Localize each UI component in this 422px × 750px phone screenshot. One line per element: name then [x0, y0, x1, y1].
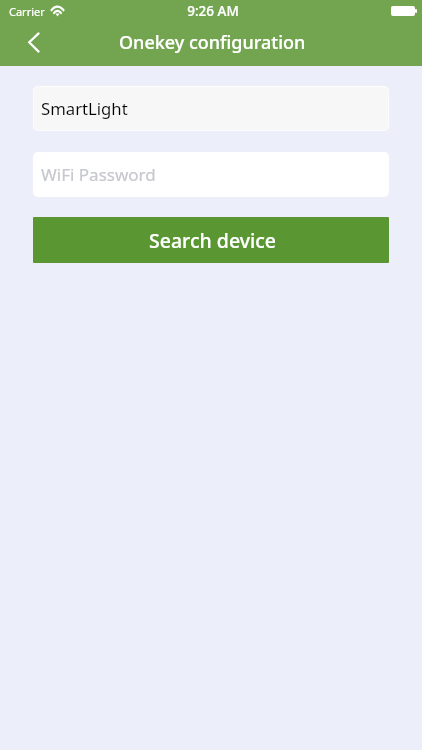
staticText: WiFi Password — [41, 163, 156, 186]
button[interactable]: WiFi Password — [33, 152, 389, 197]
button[interactable]: SmartLight — [33, 86, 389, 131]
staticText: Onekey configuration — [119, 30, 306, 55]
button[interactable]: Back — [14, 26, 54, 66]
staticText: Carrier — [9, 4, 45, 19]
staticText: SmartLight — [41, 97, 128, 120]
staticText: 9:26 AM — [187, 2, 239, 20]
staticText: Search device — [149, 227, 277, 254]
button[interactable]: Search device — [33, 217, 389, 263]
